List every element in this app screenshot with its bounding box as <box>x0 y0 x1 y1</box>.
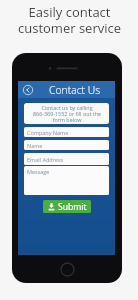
button[interactable]: Name <box>24 140 109 150</box>
staticText: Contact us by calling 866-369-1552 or fi… <box>33 104 101 123</box>
button[interactable]: Company Name <box>24 127 109 137</box>
button[interactable]: Email Address <box>24 153 109 165</box>
staticText: Easily contact customer service <box>18 3 121 37</box>
button[interactable]: Home <box>60 262 75 277</box>
staticText: Contact Us <box>49 83 101 97</box>
staticText: Email Address <box>27 156 64 163</box>
staticText: Message <box>27 168 50 175</box>
staticText: Company Name <box>27 129 69 136</box>
staticText: Name <box>27 142 43 149</box>
button[interactable]: Back <box>22 84 34 96</box>
button[interactable]: Submit <box>43 200 91 213</box>
staticText: Submit <box>58 201 87 213</box>
button[interactable]: Message <box>24 166 109 195</box>
